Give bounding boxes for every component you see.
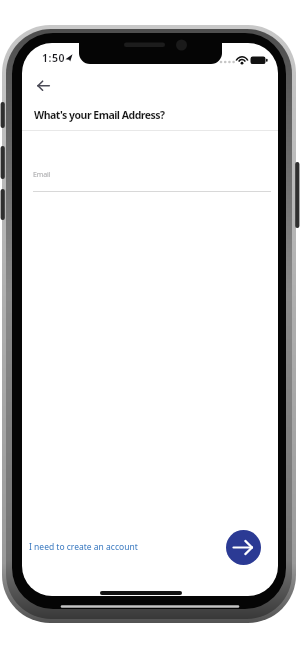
button[interactable]: I need to create an account [26,538,148,556]
button[interactable] [226,530,261,565]
button[interactable]: Email [30,160,274,194]
staticText: What's your Email Address? [34,108,165,122]
button[interactable] [30,75,56,95]
staticText: Email [33,170,51,180]
staticText: 1:50 [42,51,65,65]
staticText: I need to create an account [29,541,138,553]
